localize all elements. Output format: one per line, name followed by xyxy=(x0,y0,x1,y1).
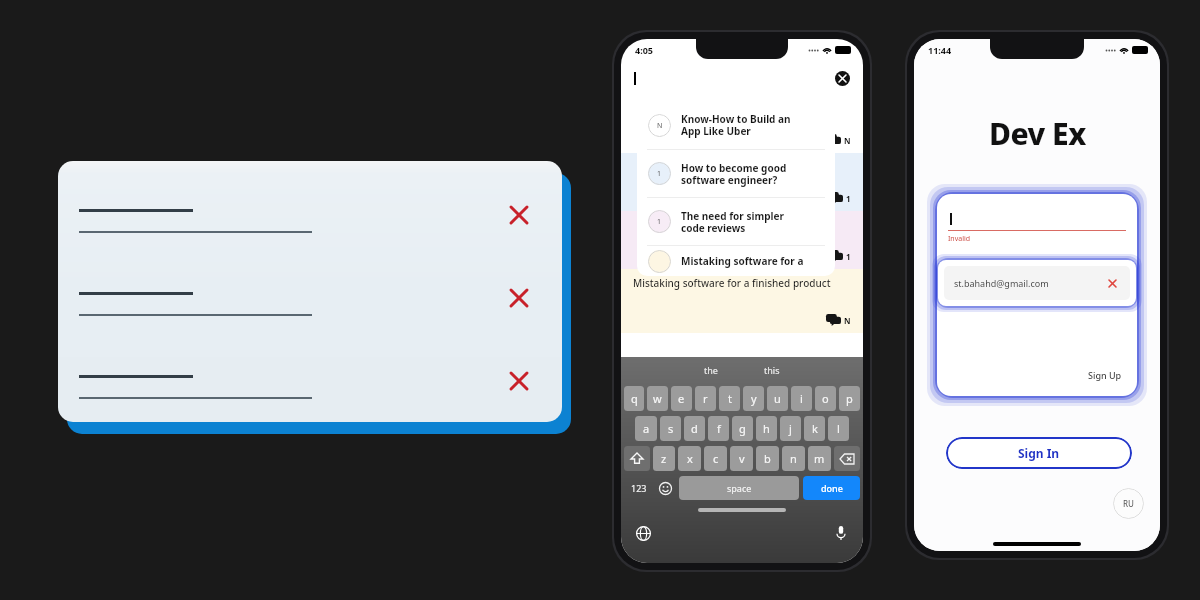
staticText: p xyxy=(846,391,853,406)
staticText: a xyxy=(643,421,650,436)
button[interactable]: space xyxy=(679,476,799,500)
staticText: this xyxy=(764,364,780,376)
button[interactable]: p xyxy=(839,386,860,411)
button[interactable]: Delete item 3 xyxy=(501,363,537,399)
staticText: 1 xyxy=(846,193,851,204)
button[interactable]: 1 xyxy=(637,150,835,197)
staticText: 1 xyxy=(657,217,662,227)
staticText: l xyxy=(837,421,840,436)
button[interactable]: a xyxy=(635,416,657,441)
button[interactable]: d xyxy=(684,416,705,441)
button[interactable]: Clear search xyxy=(831,67,853,89)
button[interactable]: Shift xyxy=(624,446,650,471)
button[interactable]: f xyxy=(708,416,729,441)
button[interactable]: s xyxy=(660,416,681,441)
button[interactable]: Delete item 3 xyxy=(58,357,562,419)
button[interactable]: x xyxy=(678,446,701,471)
staticText: f xyxy=(717,421,721,436)
staticText: The need for simpler code reviews xyxy=(681,209,784,235)
staticText: the xyxy=(704,364,718,376)
staticText: w xyxy=(653,391,662,406)
button[interactable]: Delete item 2 xyxy=(58,274,562,336)
button[interactable]: Backspace xyxy=(834,446,860,471)
staticText: 11:44 xyxy=(928,44,952,56)
button[interactable]: w xyxy=(647,386,668,411)
button[interactable]: Delete item 1 xyxy=(58,191,562,253)
button[interactable]: the xyxy=(681,357,741,383)
button[interactable]: j xyxy=(780,416,801,441)
staticText: Mistaking software for a finished produc… xyxy=(633,276,831,290)
button[interactable]: y xyxy=(743,386,764,411)
button[interactable]: h xyxy=(756,416,777,441)
staticText: b xyxy=(764,451,771,466)
staticText: d xyxy=(691,421,698,436)
staticText: space xyxy=(727,482,752,494)
button[interactable]: Emoji xyxy=(654,474,676,502)
button[interactable]: l xyxy=(828,416,849,441)
button[interactable]: t xyxy=(719,386,740,411)
button[interactable]: 123 xyxy=(624,474,654,502)
button[interactable]: Sign Up xyxy=(1084,365,1126,385)
button[interactable]: m xyxy=(808,446,831,471)
staticText: 123 xyxy=(631,482,647,494)
staticText: Sign Up xyxy=(1088,369,1122,381)
staticText: i xyxy=(800,391,803,406)
staticText: q xyxy=(631,391,638,406)
staticText: N xyxy=(844,315,851,326)
button[interactable]: c xyxy=(704,446,727,471)
button[interactable]: k xyxy=(804,416,825,441)
button[interactable]: q xyxy=(624,386,644,411)
button[interactable]: g xyxy=(732,416,753,441)
button[interactable]: o xyxy=(815,386,836,411)
button[interactable]: i xyxy=(791,386,812,411)
staticText: st.bahahd@gmail.com xyxy=(954,277,1049,289)
button[interactable]: Remove suggestion xyxy=(1104,275,1120,291)
staticText: z xyxy=(661,451,667,466)
button[interactable]: N xyxy=(637,101,835,149)
button[interactable]: this xyxy=(741,357,802,383)
staticText: v xyxy=(739,451,745,466)
button[interactable]: Mistaking software for a finished produc… xyxy=(621,269,863,333)
button[interactable]: N xyxy=(621,95,863,153)
staticText: n xyxy=(790,451,797,466)
button[interactable]: r xyxy=(695,386,716,411)
button[interactable]: Delete item 2 xyxy=(501,280,537,316)
staticText: N xyxy=(657,121,663,131)
staticText: e xyxy=(678,391,685,406)
staticText: Invalid xyxy=(948,234,971,244)
staticText: 1 xyxy=(657,169,662,179)
staticText: r xyxy=(703,391,708,406)
button[interactable]: b xyxy=(756,446,779,471)
button[interactable]: done xyxy=(803,476,860,500)
button[interactable]: Mistaking software for a xyxy=(637,246,835,276)
button[interactable]: Delete item 1 xyxy=(501,197,537,233)
button[interactable]: u xyxy=(767,386,788,411)
staticText: Mistaking software for a xyxy=(681,254,804,268)
button[interactable]: n xyxy=(782,446,805,471)
button[interactable]: z xyxy=(653,446,675,471)
staticText: c xyxy=(713,451,719,466)
button[interactable]: RU xyxy=(1113,488,1144,519)
staticText: How to become good software engineer? xyxy=(681,161,787,187)
staticText: N xyxy=(844,135,851,146)
button[interactable]: 1 xyxy=(621,153,863,211)
staticText: 1 xyxy=(846,251,851,262)
staticText: done xyxy=(821,482,843,494)
button[interactable]: 1 xyxy=(637,198,835,245)
button[interactable]: Voice input xyxy=(831,523,851,543)
button[interactable]: st.bahahd@gmail.com xyxy=(944,266,1130,300)
staticText: 4:05 xyxy=(635,44,653,56)
staticText: j xyxy=(789,421,792,436)
button[interactable]: e xyxy=(671,386,692,411)
button[interactable]: Sign In xyxy=(946,437,1132,469)
staticText: m xyxy=(814,451,825,466)
staticText: s xyxy=(668,421,674,436)
button[interactable]: Change keyboard xyxy=(633,523,653,543)
staticText: o xyxy=(822,391,829,406)
button[interactable]: 1 xyxy=(621,211,863,269)
button[interactable]: v xyxy=(730,446,753,471)
staticText: t xyxy=(728,391,732,406)
